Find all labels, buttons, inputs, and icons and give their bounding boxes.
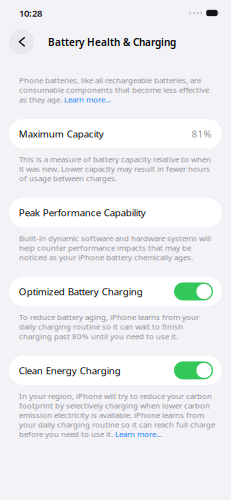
staticText: Optimized Battery Charging	[19, 285, 143, 298]
staticText: 10:28	[19, 7, 42, 19]
staticText: Peak Performance Capability	[19, 206, 146, 219]
button[interactable]: Maximum Capacity	[9, 119, 222, 148]
staticText: Phone batteries, like all rechargeable b…	[19, 75, 209, 104]
staticText: Maximum Capacity	[19, 127, 104, 140]
staticText: To reduce battery aging, iPhone learns f…	[19, 312, 199, 341]
button[interactable]: Back	[9, 29, 34, 54]
staticText: In your region, iPhone will try to reduc…	[19, 391, 215, 439]
staticText: Clean Energy Charging	[19, 364, 121, 377]
button[interactable]: Clean Energy Charging	[9, 356, 222, 385]
staticText: 81%	[191, 127, 211, 140]
staticText: This is a measure of battery capacity re…	[19, 154, 211, 183]
staticText: Built-in dynamic software and hardware s…	[19, 233, 211, 262]
button[interactable]: Optimized Battery Charging	[9, 277, 222, 306]
button[interactable]: Peak Performance Capability	[9, 198, 222, 227]
staticText: Battery Health & Charging	[48, 35, 176, 49]
